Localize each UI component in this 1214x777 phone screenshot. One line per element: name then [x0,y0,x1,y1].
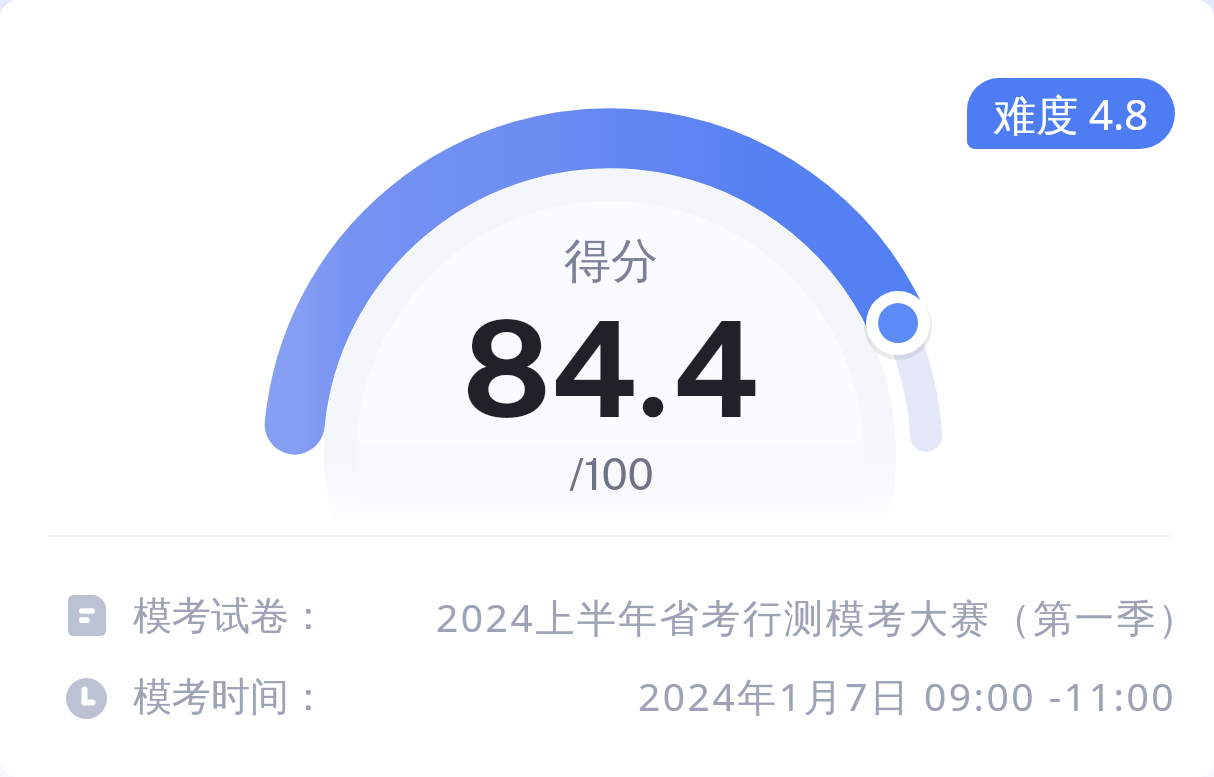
staticText: 难度 4.8 [994,85,1149,142]
staticText: 2024年1月7日 09:00 -11:00 [638,669,1177,722]
staticText: /100 [569,449,654,500]
button[interactable] [0,570,1214,656]
button[interactable] [0,656,1214,742]
staticText: 模考时间： [133,672,328,721]
other: 模考时间 [66,678,107,719]
other: 模考试卷 [68,595,106,636]
staticText: 2024上半年省考行测模考大赛（第一季） [436,590,1200,643]
staticText: 得分 [564,232,658,291]
button[interactable]: 难度 4.8 [967,78,1175,149]
staticText: 模考试卷： [133,591,328,640]
staticText: 84.4 [462,291,759,447]
